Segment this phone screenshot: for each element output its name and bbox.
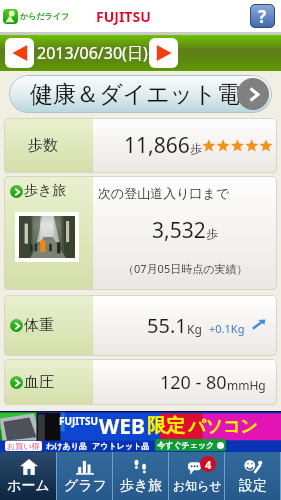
staticText: 55.1: [147, 312, 187, 339]
staticText: 設定: [239, 477, 267, 495]
staticText: 今すぐチェック: [157, 440, 215, 450]
button[interactable]: ホーム: [0, 452, 57, 500]
staticText: 次の登山道入り口まで: [98, 185, 277, 201]
staticText: +0.1Kg: [209, 321, 245, 336]
staticText: 11,866: [124, 131, 190, 160]
staticText: WEB: [99, 412, 146, 440]
button[interactable]: 健康＆ダイエット電子: [9, 75, 272, 113]
button[interactable]: Next day: [149, 38, 178, 68]
staticText: からだライフ: [20, 11, 70, 21]
staticText: 体重: [24, 316, 54, 335]
staticText: mmHg: [227, 377, 266, 393]
staticText: FUJITSU: [59, 414, 99, 428]
staticText: Kg: [187, 321, 202, 337]
staticText: 健康＆ダイエット電子: [30, 80, 263, 109]
staticText: 120 - 80: [160, 370, 227, 395]
staticText: 歩: [206, 226, 218, 241]
staticText: アウトレット品: [92, 441, 150, 451]
staticText: FUJITSU: [96, 7, 151, 26]
button[interactable]: グラフ: [57, 452, 113, 500]
staticText: お買い得: [7, 441, 40, 451]
staticText: 4: [205, 457, 212, 472]
button[interactable]: Advertisement: [0, 411, 281, 452]
staticText: パソコン: [188, 416, 258, 437]
staticText: 血圧: [24, 373, 54, 392]
staticText: 歩き旅: [120, 477, 163, 495]
button[interactable]: 4: [169, 452, 225, 500]
staticText: ?: [258, 5, 267, 28]
button[interactable]: 歩き旅: [4, 176, 277, 290]
staticText: （07月05日時点の実績）: [123, 261, 248, 276]
staticText: 限定: [147, 414, 185, 438]
button[interactable]: 体重: [4, 295, 277, 356]
staticText: 3,532: [152, 216, 206, 245]
staticText: わけあり品: [46, 441, 87, 451]
staticText: グラフ: [64, 477, 107, 495]
button[interactable]: Previous day: [5, 38, 34, 68]
staticText: お知らせ: [173, 478, 222, 493]
staticText: 2013/06/30(日): [37, 42, 148, 64]
button[interactable]: 歩数: [4, 118, 277, 173]
staticText: ホーム: [7, 477, 50, 495]
staticText: 歩き旅: [24, 182, 67, 200]
staticText: 歩数: [28, 136, 58, 155]
button[interactable]: Help: [250, 4, 275, 28]
button[interactable]: 歩き旅: [113, 452, 169, 500]
button[interactable]: 設定: [225, 452, 281, 500]
staticText: 歩: [190, 141, 202, 156]
button[interactable]: 血圧: [4, 359, 277, 405]
